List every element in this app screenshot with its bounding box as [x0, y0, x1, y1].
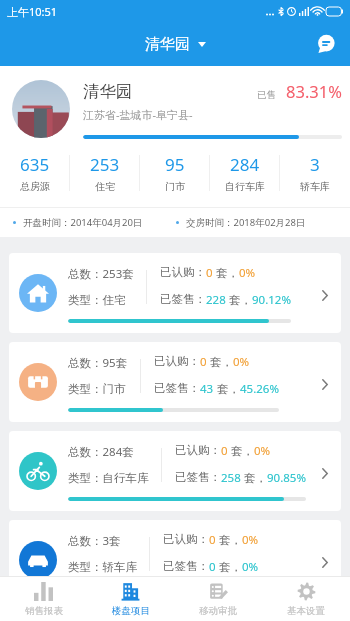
staticText: 0 — [221, 443, 228, 459]
staticText: 已认购： — [160, 265, 206, 279]
staticText: 43 — [200, 381, 214, 397]
staticText: 0 — [206, 265, 213, 281]
staticText: 已签售： — [175, 470, 221, 484]
staticText: 258 — [221, 470, 241, 486]
button[interactable]: 284 — [210, 142, 280, 207]
staticText: 类型：自行车库 — [68, 471, 149, 485]
staticText: 自行车库 — [225, 180, 265, 193]
staticText: 总数：284套 — [68, 444, 134, 460]
button[interactable]: 销售报表 — [0, 577, 87, 621]
staticText: 95 — [165, 153, 185, 176]
staticText: 套， — [228, 443, 254, 459]
staticText: 套， — [226, 292, 252, 308]
staticText: 套， — [207, 354, 233, 370]
staticText: 江苏省-盐城市-阜宁县- — [83, 107, 193, 122]
staticText: 253 — [90, 153, 120, 176]
button[interactable]: 楼盘项目 — [87, 577, 174, 621]
button[interactable]: 移动审批 — [174, 577, 262, 621]
staticText: 套， — [241, 470, 267, 486]
staticText: 284 — [230, 153, 260, 176]
staticText: 轿车库 — [300, 180, 330, 193]
staticText: 0% — [233, 354, 250, 370]
staticText: 已签售： — [160, 292, 206, 306]
staticText: 套， — [214, 381, 240, 397]
staticText: 228 — [206, 292, 226, 308]
staticText: 基本设置 — [287, 605, 325, 617]
button[interactable]: 总数：95套 — [9, 342, 341, 422]
staticText: 类型：门市 — [68, 382, 126, 396]
staticText: 清华园 — [83, 81, 133, 102]
staticText: 总数：3套 — [68, 533, 121, 549]
staticText: 已认购： — [154, 354, 200, 368]
staticText: 0 — [209, 532, 216, 548]
staticText: 3 — [310, 153, 320, 176]
staticText: 类型：轿车库 — [68, 560, 137, 574]
staticText: 90.85% — [267, 470, 306, 486]
staticText: 635 — [20, 153, 50, 176]
staticText: 清华园 — [145, 35, 190, 54]
staticText: 已签售： — [154, 381, 200, 395]
staticText: 开盘时间：2014年04月20日 — [23, 216, 143, 229]
staticText: 已认购： — [175, 443, 221, 457]
button[interactable]: 基本设置 — [262, 577, 350, 621]
button[interactable]: 635 — [0, 142, 70, 207]
staticText: 已售 — [257, 89, 276, 101]
button[interactable]: 总数：284套 — [9, 431, 341, 511]
staticText: 0% — [242, 559, 259, 575]
staticText: 83.31% — [286, 80, 342, 102]
button[interactable]: 总数：253套 — [9, 253, 341, 333]
staticText: 0% — [242, 532, 259, 548]
staticText: 移动审批 — [199, 605, 237, 617]
staticText: 0 — [200, 354, 207, 370]
staticText: 0% — [239, 265, 256, 281]
staticText: 门市 — [165, 180, 185, 193]
button[interactable]: 清华园 — [139, 29, 212, 60]
button[interactable]: 253 — [70, 142, 140, 207]
staticText: 45.26% — [240, 381, 279, 397]
staticText: 套， — [216, 559, 242, 575]
staticText: 总房源 — [20, 180, 50, 193]
staticText: 类型：住宅 — [68, 293, 126, 307]
staticText: 上午10:51 — [7, 4, 58, 19]
staticText: 总数：95套 — [68, 355, 128, 371]
staticText: 套， — [213, 265, 239, 281]
button[interactable]: 3 — [280, 142, 350, 207]
staticText: 0% — [254, 443, 271, 459]
staticText: 楼盘项目 — [112, 605, 150, 617]
staticText: 套， — [216, 532, 242, 548]
button[interactable]: Messages — [311, 29, 341, 59]
staticText: 销售报表 — [25, 605, 63, 617]
staticText: 已认购： — [163, 532, 209, 546]
button[interactable]: 95 — [140, 142, 210, 207]
staticText: 总数：253套 — [68, 266, 134, 282]
staticText: 住宅 — [95, 180, 115, 193]
staticText: 已签售： — [163, 559, 209, 573]
staticText: 交房时间：2018年02月28日 — [186, 216, 306, 229]
staticText: 90.12% — [252, 292, 291, 308]
button[interactable]: 总数：3套 — [9, 520, 341, 600]
staticText: 0 — [209, 559, 216, 575]
